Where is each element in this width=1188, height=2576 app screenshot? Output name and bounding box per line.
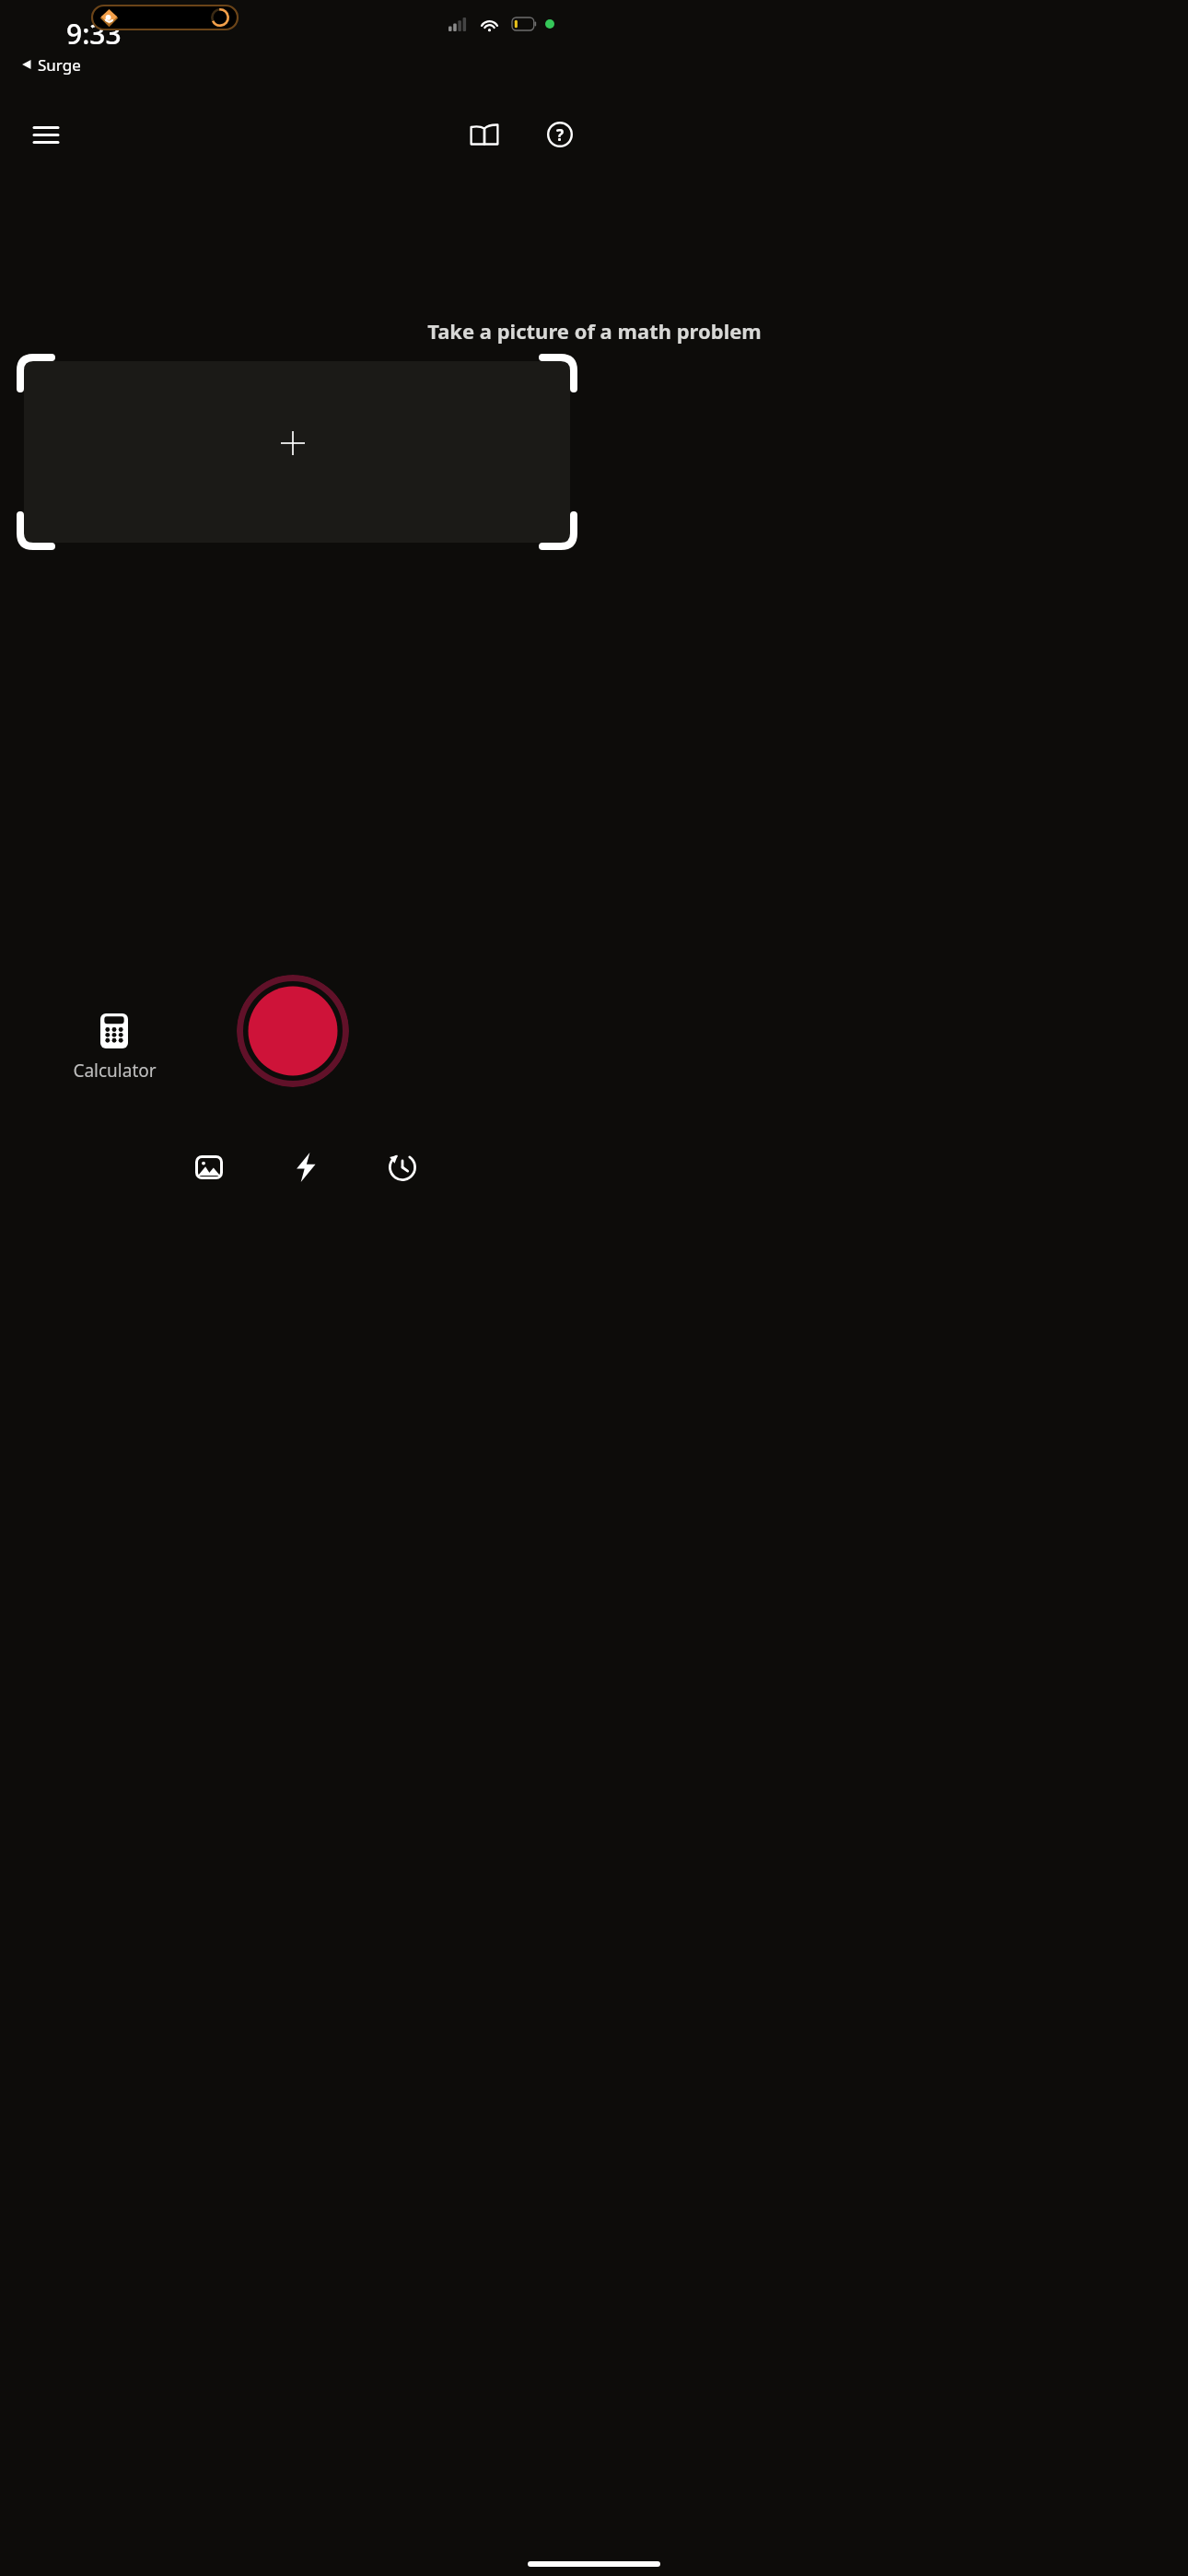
- button[interactable]: Shutter: [237, 975, 349, 1087]
- staticText: Take a picture of a math problem: [427, 317, 762, 345]
- button[interactable]: Calculator: [41, 1013, 188, 1083]
- button[interactable]: Learn: [460, 111, 508, 158]
- staticText: Surge: [38, 54, 81, 76]
- staticText: ?: [556, 124, 565, 146]
- button[interactable]: Help: [536, 111, 584, 158]
- button[interactable]: Surge: [20, 52, 81, 77]
- button[interactable]: Gallery: [182, 1141, 236, 1194]
- staticText: 9:33: [66, 15, 122, 52]
- button[interactable]: History: [376, 1141, 429, 1194]
- button[interactable]: Menu: [22, 111, 70, 158]
- staticText: Calculator: [73, 1059, 157, 1083]
- button[interactable]: Flash: [279, 1141, 332, 1194]
